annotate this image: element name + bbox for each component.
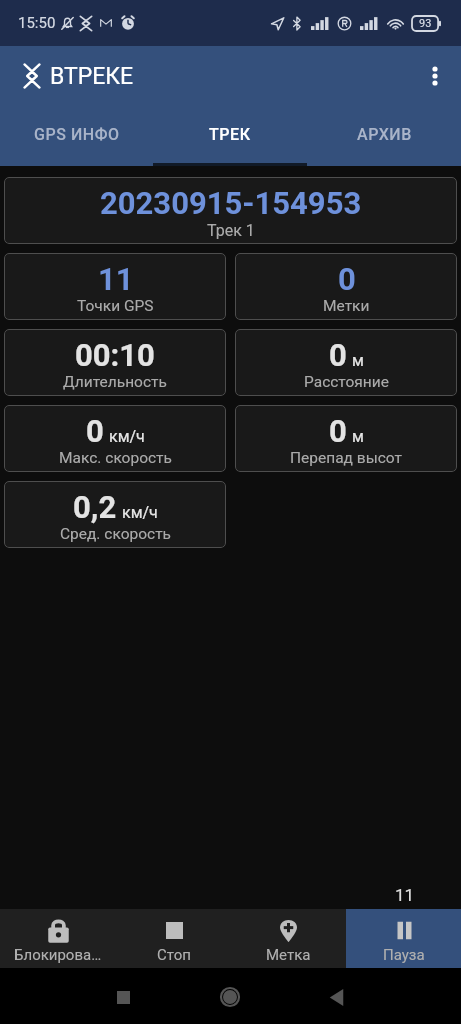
staticText: Стоп bbox=[157, 946, 191, 964]
button[interactable]: 0 bbox=[4, 405, 226, 472]
staticText: 11 bbox=[98, 261, 134, 297]
button[interactable]: 0,2 bbox=[4, 481, 226, 548]
staticText: 0 bbox=[329, 413, 347, 449]
staticText: м bbox=[352, 351, 364, 370]
staticText: 0 bbox=[338, 261, 356, 297]
button[interactable]: Стоп bbox=[116, 909, 231, 968]
button[interactable]: Recent apps bbox=[103, 977, 143, 1017]
staticText: Длительность bbox=[63, 373, 167, 391]
staticText: АРХИВ bbox=[357, 125, 412, 144]
staticText: Метки bbox=[323, 297, 370, 315]
button[interactable]: 0 bbox=[235, 329, 457, 396]
staticText: ВТРЕКЕ bbox=[50, 63, 134, 90]
staticText: 0 bbox=[329, 337, 347, 373]
button[interactable]: 0 bbox=[235, 253, 457, 320]
staticText: Расстояние bbox=[304, 373, 389, 391]
staticText: 93 bbox=[419, 17, 432, 30]
staticText: Точки GPS bbox=[77, 297, 154, 315]
button[interactable]: 20230915-154953 bbox=[4, 177, 457, 244]
button[interactable]: More options bbox=[418, 59, 452, 93]
button[interactable]: Back bbox=[316, 977, 356, 1017]
staticText: Трек 1 bbox=[207, 221, 255, 240]
staticText: 15:50 bbox=[18, 14, 56, 32]
staticText: км/ч bbox=[109, 427, 145, 446]
button[interactable]: 00:10 bbox=[4, 329, 226, 396]
button[interactable]: Пауза bbox=[346, 909, 461, 968]
staticText: км/ч bbox=[122, 503, 158, 522]
staticText: ТРЕК bbox=[209, 125, 251, 144]
staticText: Пауза bbox=[383, 946, 425, 964]
staticText: Перепад высот bbox=[290, 449, 402, 467]
staticText: 0 bbox=[86, 413, 104, 449]
button[interactable]: ТРЕК bbox=[153, 106, 307, 166]
staticText: Макс. скорость bbox=[59, 449, 172, 467]
staticText: 20230915-154953 bbox=[100, 185, 362, 221]
staticText: Блокирова… bbox=[14, 946, 102, 964]
button[interactable]: Home bbox=[210, 977, 250, 1017]
button[interactable]: АРХИВ bbox=[307, 106, 461, 166]
staticText: GPS ИНФО bbox=[34, 125, 120, 144]
button[interactable]: Блокирова… bbox=[0, 909, 116, 968]
staticText: м bbox=[352, 427, 364, 446]
button[interactable]: 11 bbox=[4, 253, 226, 320]
staticText: 11 bbox=[395, 885, 415, 905]
staticText: Метка bbox=[266, 946, 311, 964]
button[interactable]: Метка bbox=[231, 909, 346, 968]
button[interactable]: GPS ИНФО bbox=[0, 106, 153, 166]
staticText: 0,2 bbox=[73, 489, 117, 525]
staticText: 00:10 bbox=[75, 337, 155, 373]
staticText: Сред. скорость bbox=[60, 525, 171, 543]
button[interactable]: 0 bbox=[235, 405, 457, 472]
